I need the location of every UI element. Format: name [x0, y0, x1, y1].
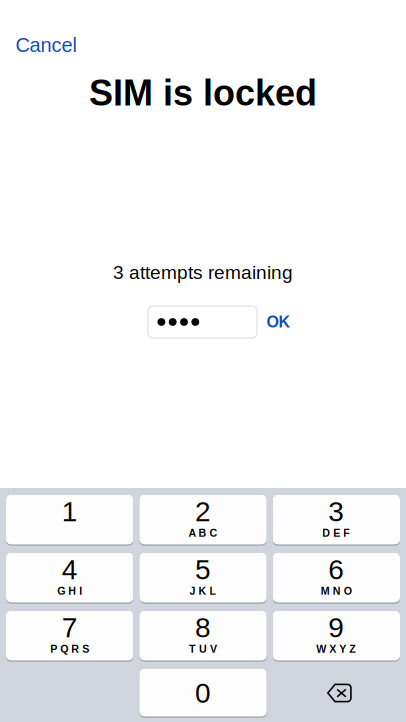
- button[interactable]: OK: [259, 305, 299, 339]
- staticText: D E F: [322, 527, 350, 539]
- staticText: 1: [62, 496, 78, 527]
- button[interactable]: Cancel: [0, 26, 94, 64]
- staticText: SIM is locked: [89, 73, 317, 113]
- button[interactable]: 1: [6, 495, 133, 545]
- button[interactable]: 7: [6, 611, 133, 661]
- staticText: 9: [328, 612, 344, 643]
- staticText: J K L: [189, 585, 216, 597]
- staticText: W X Y Z: [316, 643, 356, 655]
- button[interactable]: 3: [273, 495, 400, 545]
- button[interactable]: 5: [139, 553, 267, 603]
- button[interactable]: 0: [139, 669, 267, 717]
- button[interactable]: Delete: [273, 669, 400, 717]
- staticText: P Q R S: [50, 643, 89, 655]
- button[interactable]: 2: [139, 495, 267, 545]
- staticText: G H I: [57, 585, 82, 597]
- staticText: Cancel: [15, 34, 76, 56]
- staticText: 2: [195, 496, 211, 527]
- staticText: 3: [328, 496, 344, 527]
- staticText: 8: [195, 612, 211, 643]
- button[interactable]: 8: [139, 611, 267, 661]
- staticText: 6: [328, 554, 344, 585]
- staticText: 4: [62, 554, 78, 585]
- button[interactable]: 9: [273, 611, 400, 661]
- button[interactable]: 4: [6, 553, 133, 603]
- staticText: A B C: [188, 527, 217, 539]
- staticText: 5: [195, 554, 211, 585]
- button[interactable]: 6: [273, 553, 400, 603]
- staticText: 7: [62, 612, 78, 643]
- staticText: T U V: [189, 643, 217, 655]
- staticText: OK: [267, 313, 291, 331]
- staticText: 0: [195, 677, 211, 709]
- staticText: M N O: [321, 585, 352, 597]
- staticText: 3 attempts remaining: [113, 262, 293, 283]
